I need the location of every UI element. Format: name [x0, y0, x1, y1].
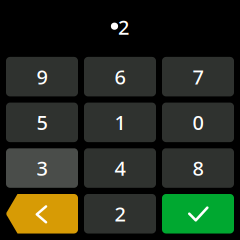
button[interactable]: 5	[6, 103, 78, 142]
button[interactable]: 3	[6, 148, 78, 188]
staticText: 5	[36, 109, 47, 136]
staticText: 2	[114, 200, 125, 227]
staticText: 0	[192, 109, 203, 136]
button[interactable]: Delete	[6, 194, 78, 233]
staticText: 3	[36, 155, 47, 181]
staticText: 7	[192, 63, 203, 90]
button[interactable]: 7	[162, 57, 234, 96]
staticText: 6	[114, 63, 125, 90]
button[interactable]: 6	[84, 57, 156, 96]
staticText: 1	[114, 109, 125, 136]
button[interactable]: Confirm	[162, 194, 234, 233]
button[interactable]: 9	[6, 57, 78, 96]
staticText: 4	[114, 155, 125, 181]
staticText: 9	[36, 63, 47, 90]
button[interactable]: 0	[162, 103, 234, 142]
button[interactable]: 4	[84, 148, 156, 188]
button[interactable]: 2	[84, 194, 156, 233]
staticText: 8	[192, 155, 203, 181]
button[interactable]: 1	[84, 103, 156, 142]
staticText: 2	[118, 14, 129, 40]
button[interactable]: 8	[162, 148, 234, 188]
